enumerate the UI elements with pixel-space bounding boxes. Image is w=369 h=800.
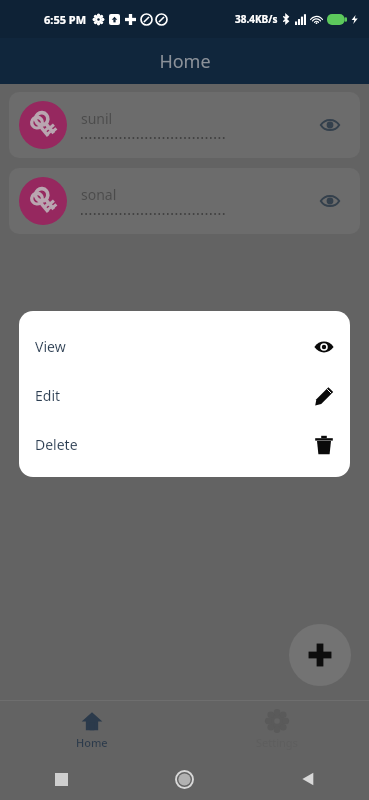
staticText: 6:55 PM [44,12,87,27]
button[interactable]: Delete [19,420,350,469]
staticText: Delete [35,435,78,454]
button[interactable]: View [19,322,350,371]
button[interactable]: sunil [9,92,360,158]
staticText: Home [76,735,108,750]
staticText: View [35,337,66,356]
staticText: sunil [81,109,113,128]
button[interactable]: sonal [9,168,360,234]
staticText: Edit [35,386,61,405]
button[interactable]: Show password [310,181,350,221]
staticText: 38.4KB/s [235,12,278,26]
staticText: Home [159,49,211,74]
button[interactable]: Add password [289,624,351,686]
button[interactable]: Home [0,701,184,758]
staticText: sonal [81,185,117,204]
button[interactable]: Edit [19,371,350,420]
button[interactable]: Show password [310,105,350,145]
